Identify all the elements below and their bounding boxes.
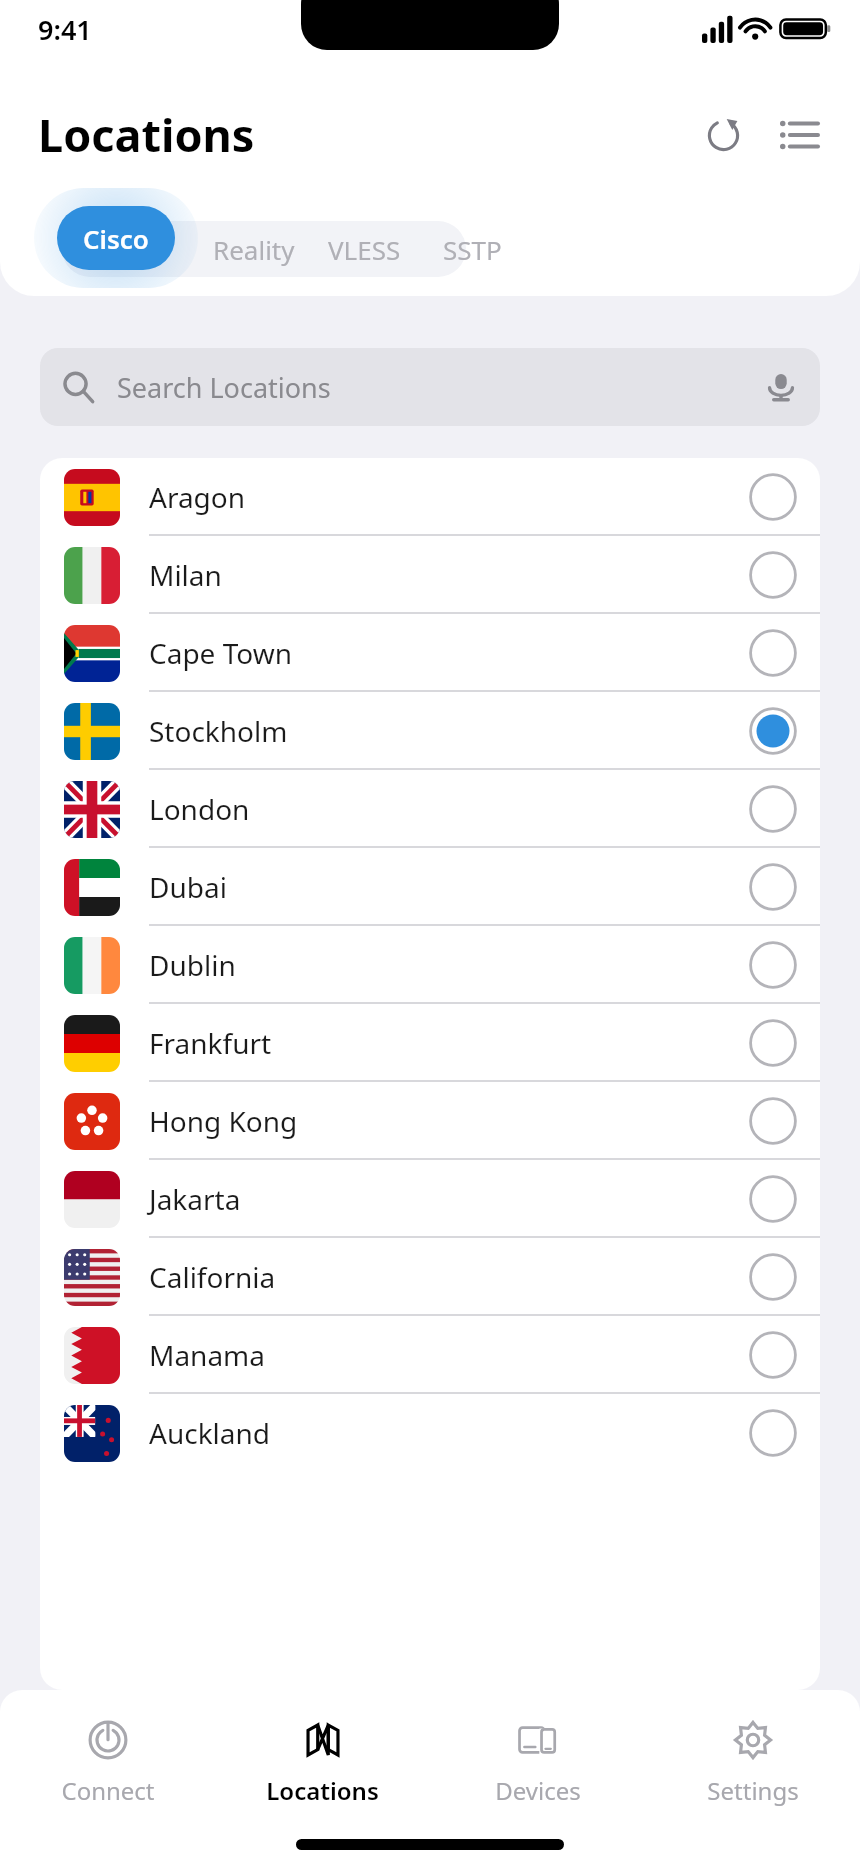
staticText: Milan (149, 556, 222, 594)
button[interactable]: Devices (430, 1714, 645, 1811)
button[interactable]: California (40, 1238, 820, 1316)
staticText: SSTP (443, 232, 502, 267)
button[interactable]: Voice search (760, 366, 802, 408)
staticText: Stockholm (149, 712, 288, 750)
button[interactable]: London (40, 770, 820, 848)
staticText: Auckland (149, 1414, 271, 1452)
button[interactable]: Frankfurt (40, 1004, 820, 1082)
staticText: VLESS (328, 232, 401, 267)
staticText: Devices (495, 1774, 581, 1807)
button[interactable]: Settings (645, 1714, 860, 1811)
staticText: Manama (149, 1336, 266, 1374)
staticText: Locations (266, 1774, 379, 1807)
staticText: Aragon (149, 478, 246, 516)
button[interactable]: List options (770, 106, 828, 164)
button[interactable]: Stockholm (40, 692, 820, 770)
button[interactable]: Jakarta (40, 1160, 820, 1238)
staticText: Dublin (149, 946, 236, 984)
staticText: London (149, 790, 250, 828)
button[interactable]: Reality (198, 221, 310, 277)
staticText: 9:41 (38, 11, 92, 48)
button[interactable]: Aragon (40, 458, 820, 536)
staticText: Settings (707, 1774, 799, 1807)
button[interactable]: Refresh (694, 106, 752, 164)
staticText: Connect (61, 1774, 155, 1807)
staticText: Hong Kong (149, 1102, 298, 1140)
button[interactable]: Dubai (40, 848, 820, 926)
button[interactable]: Dublin (40, 926, 820, 1004)
button[interactable]: Hong Kong (40, 1082, 820, 1160)
staticText: Locations (38, 104, 255, 165)
button[interactable]: Milan (40, 536, 820, 614)
button[interactable]: SSTP (418, 221, 526, 277)
button[interactable]: Locations (215, 1714, 430, 1811)
staticText: California (149, 1258, 276, 1296)
staticText: Reality (213, 232, 295, 267)
button[interactable]: Manama (40, 1316, 820, 1394)
button[interactable]: Cape Town (40, 614, 820, 692)
button[interactable]: Connect (0, 1714, 215, 1811)
staticText: Cisco (83, 221, 149, 256)
staticText: Jakarta (149, 1180, 241, 1218)
staticText: Frankfurt (149, 1024, 272, 1062)
button[interactable]: VLESS (310, 221, 418, 277)
staticText: Dubai (149, 868, 227, 906)
staticText: Cape Town (149, 634, 292, 672)
staticText: Search Locations (117, 369, 331, 406)
button[interactable]: Search Locations (40, 348, 820, 426)
button[interactable]: Cisco (57, 206, 175, 270)
button[interactable]: Auckland (40, 1394, 820, 1472)
